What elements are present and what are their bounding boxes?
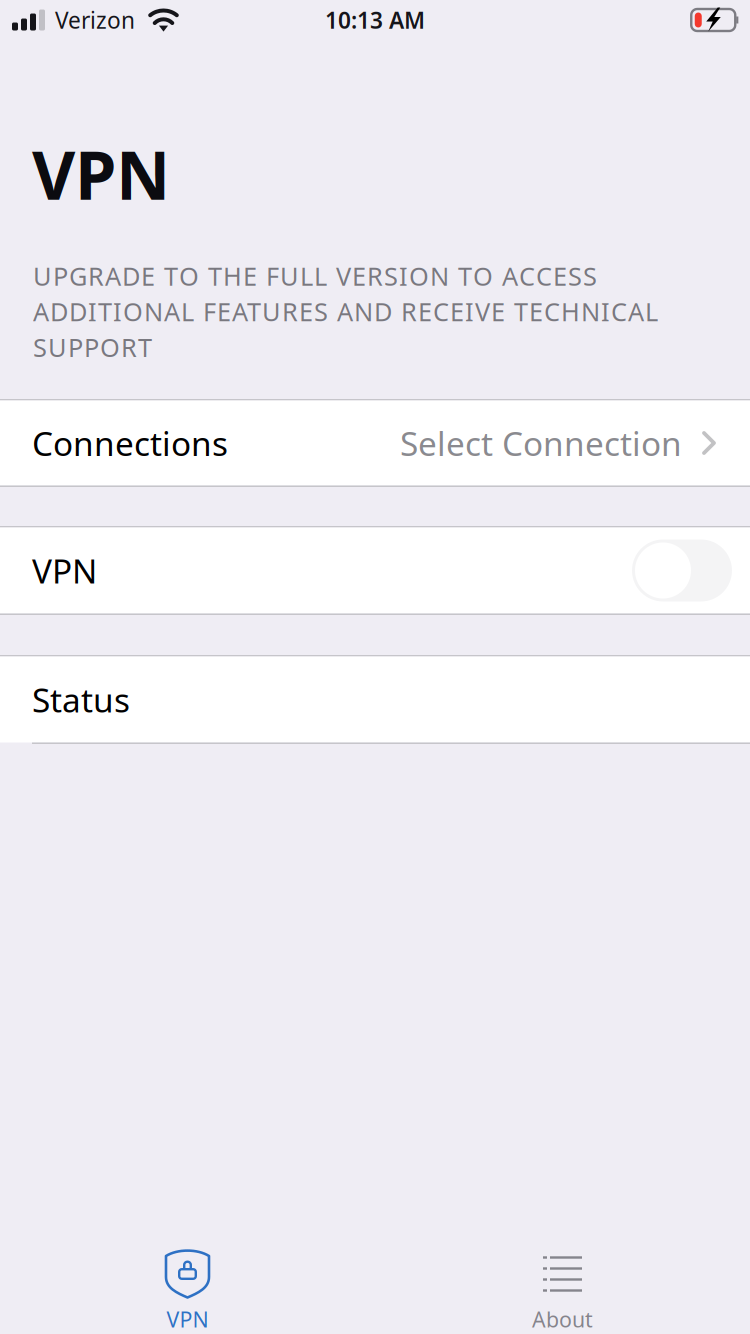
staticText: Status [32,677,130,722]
button[interactable]: VPN [0,1236,375,1334]
staticText: 10:13 AM [325,5,425,35]
staticText: Verizon [55,5,135,35]
staticText: VPN [32,548,97,593]
staticText: VPN [32,130,170,218]
button[interactable]: Connections [0,400,750,485]
staticText: Select Connection [400,421,682,465]
staticText: Connections [32,421,228,465]
button[interactable]: About [375,1236,750,1334]
button[interactable]: VPN [632,539,732,601]
staticText: VPN [166,1305,208,1333]
staticText: About [532,1305,593,1333]
staticText: UPGRADE TO THE FULL VERSION TO ACCESS AD… [33,259,658,364]
